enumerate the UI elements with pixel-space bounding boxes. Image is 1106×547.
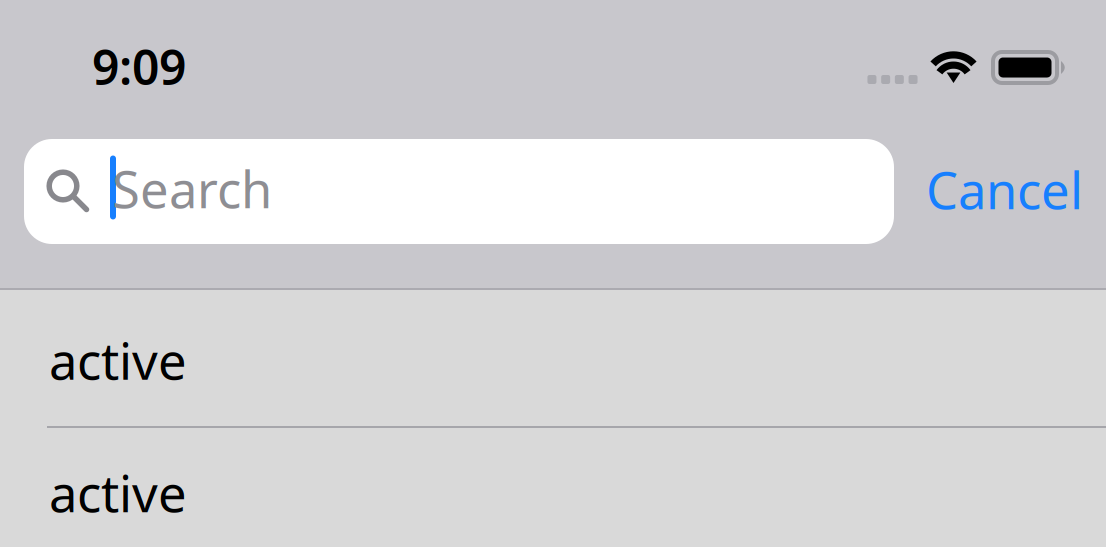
button[interactable]: Search — [24, 139, 894, 244]
staticText: active — [49, 326, 187, 394]
button[interactable]: active — [0, 428, 1106, 547]
staticText: Cancel — [926, 156, 1083, 223]
staticText: Search — [112, 155, 272, 222]
button[interactable]: Cancel — [894, 139, 1102, 244]
button[interactable]: active — [0, 290, 1106, 428]
staticText: active — [49, 459, 187, 526]
staticText: 9:09 — [92, 35, 186, 98]
